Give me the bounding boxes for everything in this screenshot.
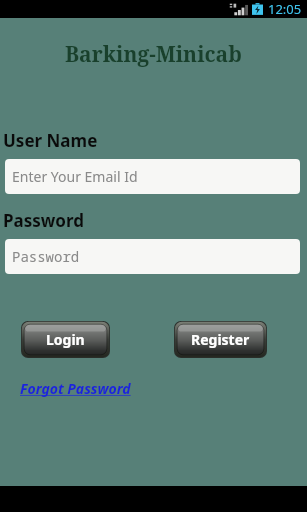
button[interactable]: Register <box>174 321 267 358</box>
staticText: Login <box>46 330 85 349</box>
staticText: Password <box>12 247 80 266</box>
button[interactable]: Forgot Password <box>18 377 133 400</box>
staticText: Register <box>191 330 250 349</box>
staticText: Enter Your Email Id <box>12 167 138 186</box>
button[interactable]: Password <box>5 239 300 274</box>
staticText: Password <box>3 209 84 232</box>
button[interactable]: Login <box>21 321 110 358</box>
staticText: Forgot Password <box>20 379 131 398</box>
staticText: User Name <box>3 129 98 152</box>
staticText: Barking-Minicab <box>65 40 242 69</box>
staticText: 12:05 <box>268 0 302 18</box>
button[interactable]: Enter Your Email Id <box>5 159 300 194</box>
